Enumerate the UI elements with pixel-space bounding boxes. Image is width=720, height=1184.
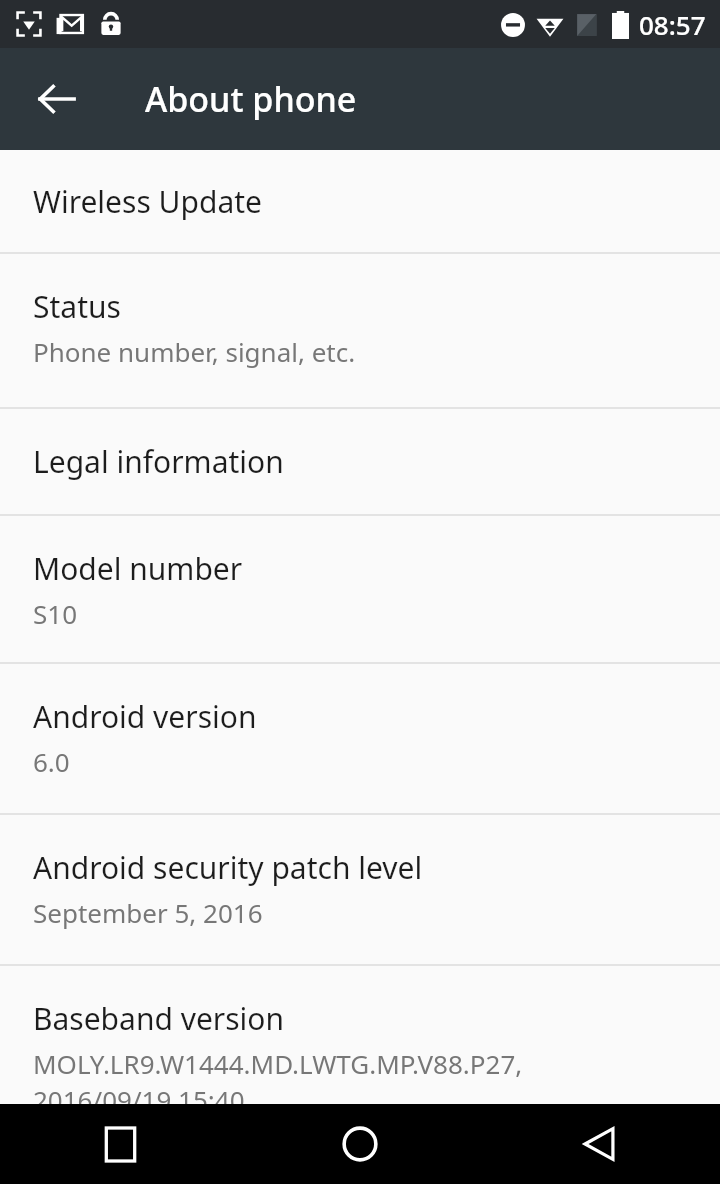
button[interactable]: Legal information [0,409,720,514]
button[interactable]: Model number [0,516,720,662]
staticText: Status [33,286,121,327]
button[interactable]: Home [240,1104,480,1184]
staticText: About phone [145,76,357,122]
staticText: Model number [33,548,243,589]
button[interactable]: Android version [0,664,720,813]
staticText: Legal information [33,441,284,482]
staticText: Android version [33,696,257,737]
staticText: Baseband version [33,998,285,1039]
staticText: Phone number, signal, etc. [33,334,356,369]
staticText: MOLY.LR9.W1444.MD.LWTG.MP.V88.P27, 2016/… [33,1046,523,1104]
button[interactable]: Back [480,1104,720,1184]
staticText: September 5, 2016 [33,895,263,930]
staticText: 08:57 [639,7,706,42]
staticText: 6.0 [33,744,70,779]
button[interactable]: Android security patch level [0,815,720,964]
button[interactable]: Baseband version [0,966,720,1104]
staticText: Android security patch level [33,847,423,888]
button[interactable]: Wireless Update [0,150,720,252]
staticText: S10 [33,596,78,631]
button[interactable]: Navigate up [21,63,93,135]
button[interactable]: Recent apps [0,1104,240,1184]
staticText: Wireless Update [33,181,262,222]
button[interactable]: Status [0,254,720,407]
